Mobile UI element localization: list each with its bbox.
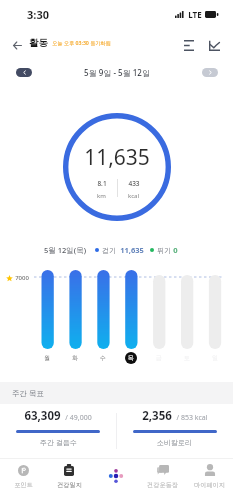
- staticText: 건강운동장: [147, 481, 178, 489]
- staticText: LTE: [188, 9, 202, 20]
- staticText: 건강일지: [57, 481, 82, 489]
- button[interactable]: 건강일지: [46, 458, 92, 503]
- staticText: 5월 9일 - 5월 12일: [84, 67, 150, 78]
- button[interactable]: Sort: [181, 37, 197, 53]
- staticText: 주간 걸음수: [40, 438, 77, 448]
- staticText: 일: [212, 354, 218, 362]
- button[interactable]: 일: [209, 352, 221, 364]
- staticText: 목: [128, 354, 134, 362]
- button[interactable]: 마이페이지: [186, 458, 233, 503]
- button[interactable]: Back: [8, 36, 26, 54]
- staticText: 8.1: [97, 179, 107, 188]
- staticText: 활동: [29, 37, 48, 49]
- button[interactable]: AI Assistant: [92, 458, 139, 503]
- staticText: 마이페이지: [194, 481, 225, 489]
- staticText: 뛰기: [157, 246, 171, 255]
- staticText: 금: [156, 354, 162, 362]
- staticText: 화: [72, 354, 78, 362]
- staticText: km: [97, 192, 106, 200]
- staticText: 걷기: [102, 246, 116, 255]
- button[interactable]: 건강운동장: [139, 458, 186, 503]
- staticText: 3:30: [27, 7, 49, 22]
- button[interactable]: Next week: [202, 68, 218, 77]
- button[interactable]: 포인트: [0, 458, 46, 503]
- button[interactable]: 월: [41, 352, 53, 364]
- staticText: 7000: [15, 274, 29, 282]
- staticText: 11,635: [120, 245, 144, 255]
- staticText: 월: [44, 354, 50, 362]
- staticText: 주간 목표: [12, 388, 44, 398]
- button[interactable]: Previous week: [16, 68, 32, 77]
- staticText: 11,635: [84, 143, 150, 172]
- staticText: 오늘 오후 03:30 동기화됨: [52, 39, 111, 46]
- button[interactable]: 수: [97, 352, 109, 364]
- button[interactable]: 2,356: [116, 404, 233, 458]
- staticText: 5월 12일(목): [44, 245, 86, 255]
- staticText: 소비칼로리: [157, 438, 192, 447]
- staticText: 433: [128, 179, 140, 188]
- staticText: / 49,000: [65, 413, 92, 423]
- staticText: 수: [100, 354, 106, 362]
- button[interactable]: 63,309: [0, 404, 116, 458]
- staticText: 2,356: [142, 408, 172, 424]
- staticText: 토: [184, 354, 190, 362]
- staticText: / 853 kcal: [176, 413, 208, 423]
- staticText: 포인트: [14, 481, 33, 489]
- staticText: 63,309: [24, 408, 61, 424]
- staticText: 0: [173, 245, 178, 255]
- staticText: kcal: [128, 192, 139, 200]
- button[interactable]: Trends: [206, 37, 222, 53]
- button[interactable]: 목: [125, 352, 137, 364]
- button[interactable]: 화: [69, 352, 81, 364]
